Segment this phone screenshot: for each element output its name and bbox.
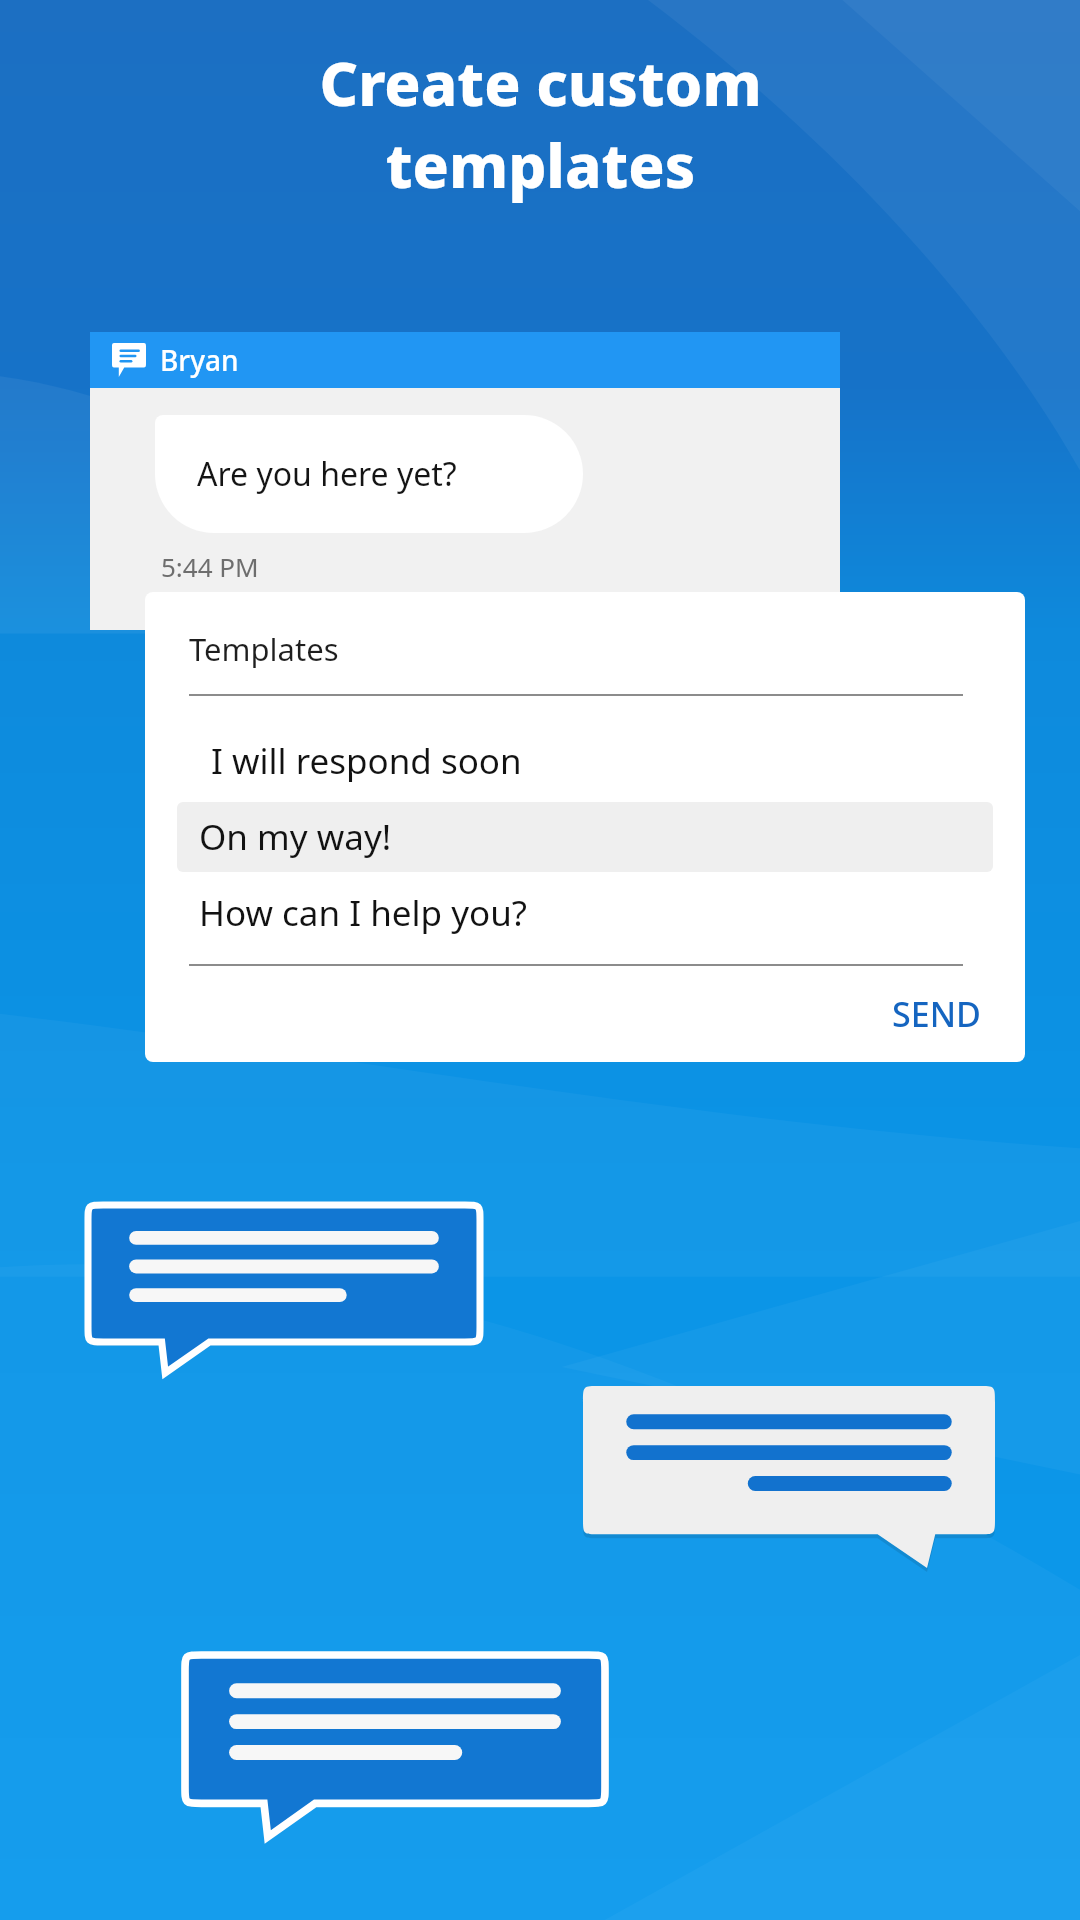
staticText: Templates <box>189 628 339 670</box>
staticText: On my way! <box>199 813 392 861</box>
staticText: I will respond soon <box>211 737 522 785</box>
button[interactable]: How can I help you? <box>177 878 993 948</box>
staticText: Are you here yet? <box>197 452 457 496</box>
staticText: Bryan <box>160 341 239 379</box>
staticText: Create custom templates <box>319 42 762 206</box>
other: Conversation <box>112 343 146 377</box>
staticText: SEND <box>892 991 981 1037</box>
button[interactable]: On my way! <box>177 802 993 872</box>
button[interactable]: I will respond soon <box>177 726 993 796</box>
button[interactable]: SEND <box>848 979 1025 1049</box>
staticText: How can I help you? <box>199 889 528 937</box>
button[interactable]: Conversation <box>90 332 840 388</box>
staticText: 5:44 PM <box>161 549 259 584</box>
button[interactable]: Are you here yet? <box>155 415 583 533</box>
